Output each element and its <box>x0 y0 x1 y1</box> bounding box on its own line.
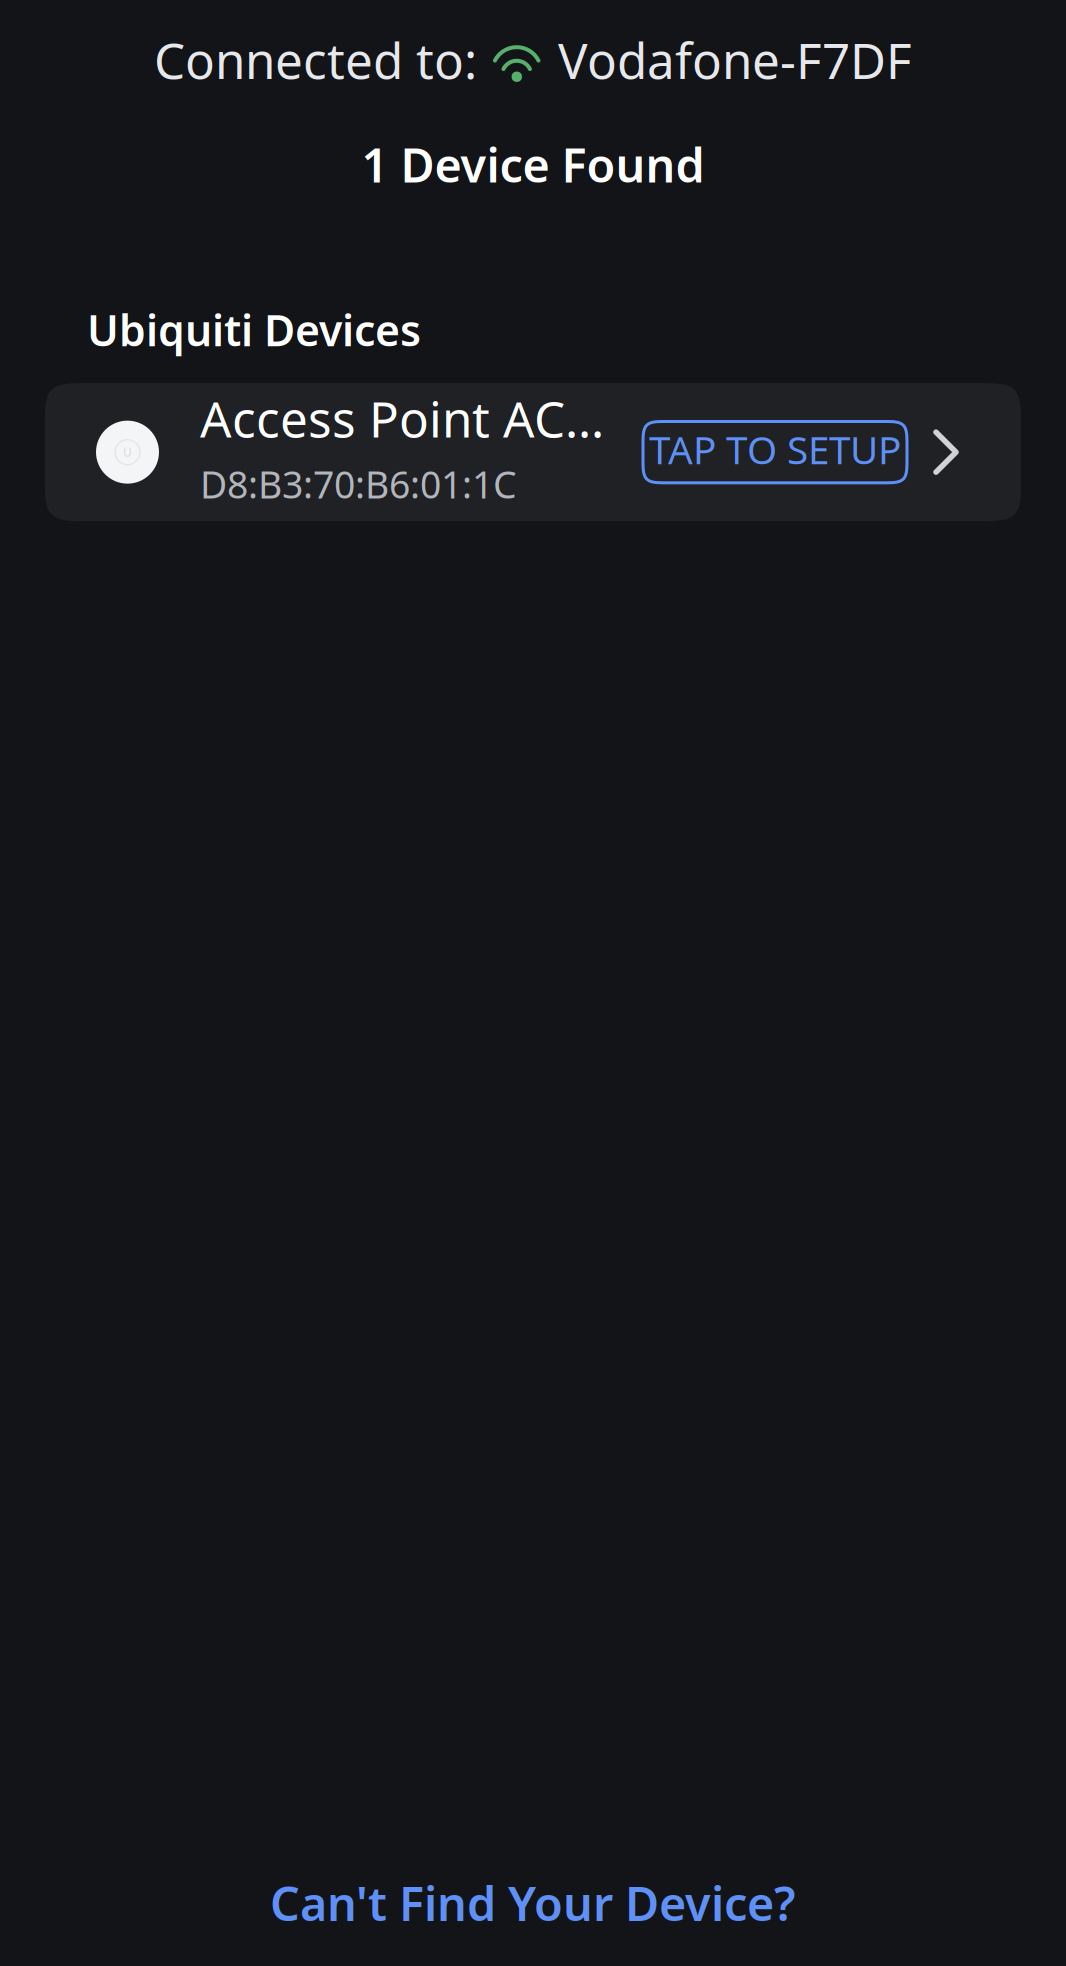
staticText: D8:B3:70:B6:01:1C <box>200 459 517 509</box>
button[interactable]: U <box>45 383 1021 521</box>
staticText: TAP TO SETUP <box>649 423 901 475</box>
staticText: Can't Find Your Device? <box>270 1872 796 1934</box>
staticText: Ubiquiti Devices <box>87 301 421 358</box>
staticText: Connected to: <box>154 27 477 92</box>
staticText: U <box>123 444 132 460</box>
staticText: Vodafone-F7DF <box>558 27 912 92</box>
button[interactable]: TAP TO SETUP <box>643 421 907 483</box>
button[interactable]: Can't Find Your Device? <box>0 1862 1066 1944</box>
staticText: 1 Device Found <box>361 133 704 195</box>
staticText: Access Point AC... <box>200 386 604 451</box>
